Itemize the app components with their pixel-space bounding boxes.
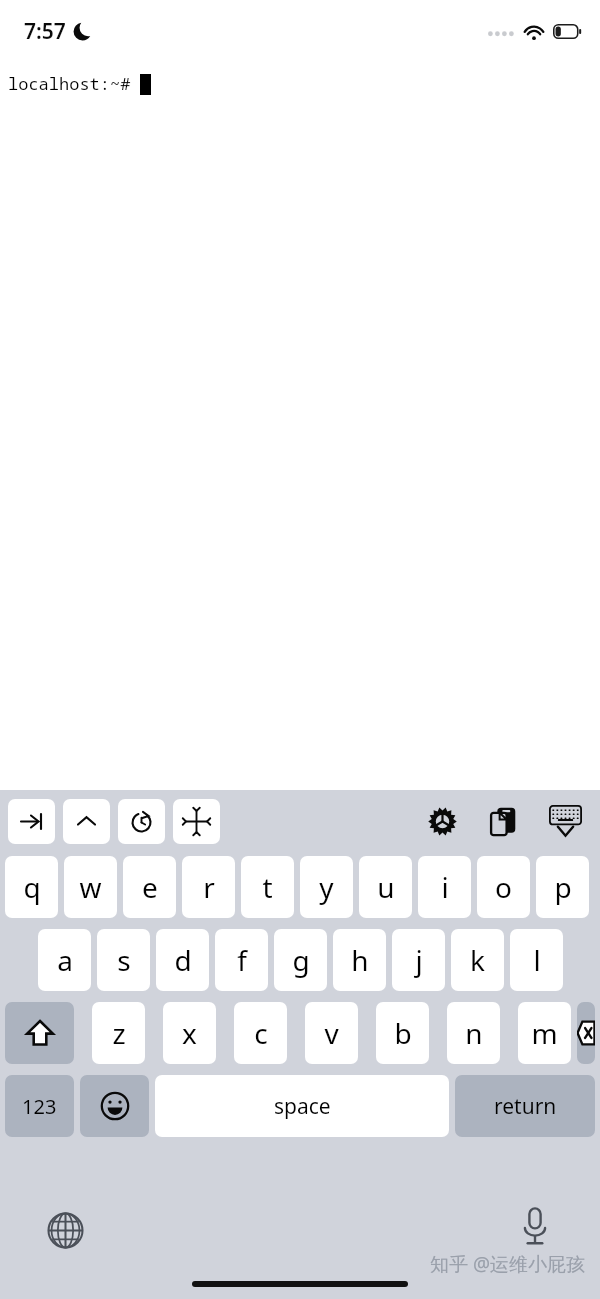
staticText: o [495,868,512,906]
button[interactable]: l [510,929,563,991]
staticText: u [377,868,395,906]
button[interactable]: y [300,856,353,918]
button[interactable]: w [64,856,117,918]
staticText: g [292,941,310,979]
button[interactable]: Settings [423,802,462,841]
staticText: x [182,1014,197,1052]
button[interactable]: f [215,929,268,991]
button[interactable]: s [97,929,150,991]
staticText: i [441,868,449,906]
staticText: r [203,868,215,906]
button[interactable]: d [156,929,209,991]
staticText: j [415,941,423,979]
button[interactable]: c [234,1002,287,1064]
staticText: c [254,1014,268,1052]
button[interactable]: q [5,856,58,918]
staticText: z [112,1014,126,1052]
button[interactable]: Hide keyboard [545,801,586,842]
button[interactable]: Change keyboard language [42,1207,88,1253]
staticText: n [465,1014,483,1052]
button[interactable]: g [274,929,327,991]
button[interactable]: Arrow keys [173,799,220,844]
button[interactable]: 123 [5,1075,74,1137]
button[interactable]: o [477,856,530,918]
button[interactable]: Tab [8,799,55,844]
staticText: q [23,868,41,906]
staticText: y [319,868,334,906]
staticText: 7:57 [24,17,66,46]
staticText: e [142,868,158,906]
button[interactable]: x [163,1002,216,1064]
staticText: l [533,941,541,979]
staticText: m [531,1014,558,1052]
button[interactable]: r [182,856,235,918]
button[interactable]: h [333,929,386,991]
button[interactable]: t [241,856,294,918]
staticText: a [57,941,73,979]
button[interactable]: i [418,856,471,918]
button[interactable]: History [118,799,165,844]
button[interactable]: n [447,1002,500,1064]
button[interactable]: b [376,1002,429,1064]
button[interactable]: p [536,856,589,918]
button[interactable]: Dictation [512,1203,558,1249]
button[interactable]: k [451,929,504,991]
button[interactable]: u [359,856,412,918]
staticText: b [394,1014,412,1052]
button[interactable]: v [305,1002,358,1064]
button[interactable]: Backspace [577,1002,595,1064]
staticText: k [470,941,485,979]
button[interactable]: j [392,929,445,991]
button[interactable]: return [455,1075,595,1137]
staticText: w [79,868,102,906]
staticText: 123 [22,1093,57,1120]
button[interactable]: Paste [484,802,523,841]
button[interactable]: z [92,1002,145,1064]
button[interactable]: a [38,929,91,991]
staticText: h [351,941,369,979]
button[interactable]: Shift [5,1002,74,1064]
staticText: 知乎 @运维小屁孩 [430,1251,586,1277]
button[interactable]: Emoji [80,1075,149,1137]
staticText: localhost:~# [8,72,131,95]
button[interactable]: space [155,1075,449,1137]
button[interactable]: m [518,1002,571,1064]
staticText: p [554,868,572,906]
staticText: d [174,941,192,979]
staticText: s [117,941,131,979]
staticText: space [274,1092,331,1121]
button[interactable]: e [123,856,176,918]
staticText: v [324,1014,339,1052]
button[interactable]: Control [63,799,110,844]
staticText: return [494,1092,557,1121]
staticText: f [237,941,247,979]
staticText: t [262,868,273,906]
